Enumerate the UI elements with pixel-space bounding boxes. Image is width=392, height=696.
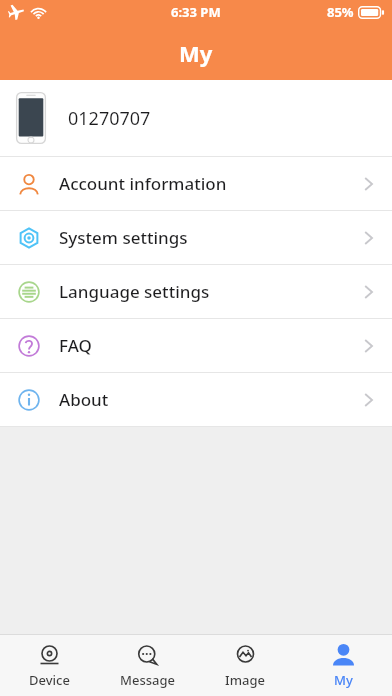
button[interactable]: My	[294, 635, 392, 696]
staticText: Image	[225, 671, 265, 689]
button[interactable]: Image	[196, 635, 294, 696]
button[interactable]: 01270707	[0, 80, 392, 156]
staticText: Account information	[59, 172, 363, 195]
button[interactable]: Account information	[0, 157, 392, 210]
button[interactable]: About	[0, 373, 392, 426]
staticText: Language settings	[59, 280, 363, 303]
staticText: FAQ	[59, 334, 363, 357]
staticText: My	[179, 38, 213, 68]
button[interactable]: System settings	[0, 211, 392, 264]
button[interactable]: Language settings	[0, 265, 392, 318]
staticText: System settings	[59, 226, 363, 249]
staticText: 85%	[327, 3, 354, 21]
staticText: My	[334, 671, 353, 689]
staticText: Message	[120, 671, 175, 689]
staticText: Device	[29, 671, 70, 689]
button[interactable]: FAQ	[0, 319, 392, 372]
button[interactable]: Message	[98, 635, 196, 696]
staticText: About	[59, 388, 363, 411]
button[interactable]: Device	[0, 635, 98, 696]
staticText: 01270707	[68, 106, 151, 131]
staticText: 6:33 PM	[171, 3, 221, 21]
